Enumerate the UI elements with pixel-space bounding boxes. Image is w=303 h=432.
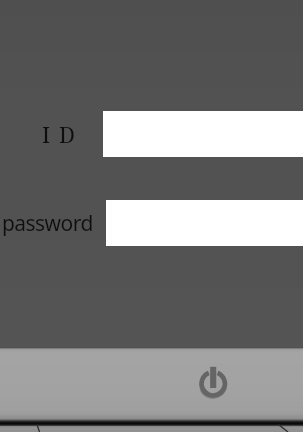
staticText: I D xyxy=(42,119,77,149)
button[interactable]: Power xyxy=(196,364,232,400)
staticText: password xyxy=(2,209,93,238)
